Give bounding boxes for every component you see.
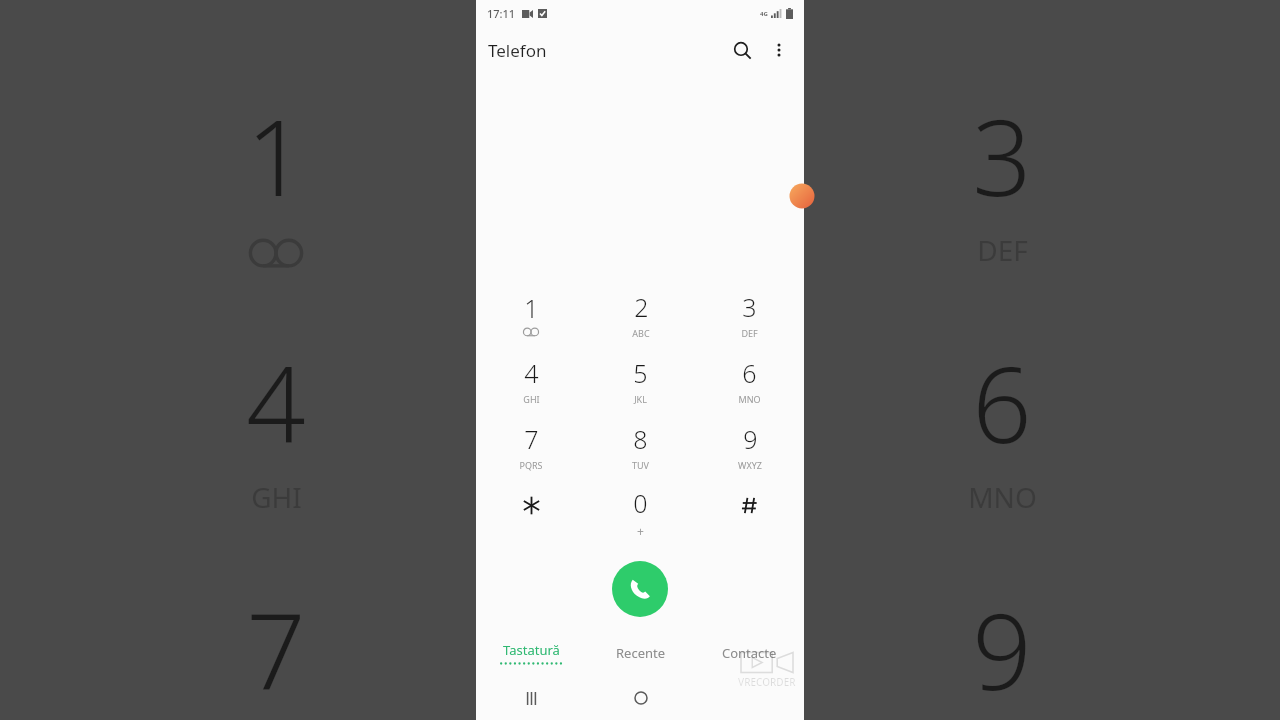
staticText: VRECORDER bbox=[738, 675, 796, 689]
staticText: 4 bbox=[524, 356, 539, 390]
staticText: Telefon bbox=[488, 39, 547, 62]
button[interactable]: Key # bbox=[695, 483, 804, 549]
staticText: 17:11 bbox=[487, 6, 516, 21]
staticText: 6 bbox=[742, 356, 757, 390]
staticText: 4G bbox=[760, 10, 768, 18]
button[interactable]: Tastatură bbox=[476, 630, 586, 676]
staticText: ABC bbox=[632, 327, 650, 339]
staticText: Contacte bbox=[722, 644, 777, 662]
button[interactable]: Key 7 bbox=[476, 417, 586, 483]
staticText: 1 bbox=[246, 85, 306, 227]
staticText: TUV bbox=[632, 459, 649, 471]
staticText: 0 bbox=[633, 486, 648, 520]
staticText: 7 bbox=[524, 422, 539, 456]
button[interactable]: Key 0 bbox=[586, 483, 695, 549]
button[interactable]: Search bbox=[722, 30, 762, 70]
button[interactable]: More options bbox=[762, 33, 796, 67]
staticText: PQRS bbox=[519, 459, 543, 471]
staticText: 9 bbox=[743, 422, 758, 456]
button[interactable]: Recent apps bbox=[476, 676, 586, 720]
staticText: DEF bbox=[741, 327, 758, 339]
staticText: 5 bbox=[633, 356, 648, 390]
staticText: GHI bbox=[251, 478, 302, 516]
staticText: Recente bbox=[616, 644, 666, 662]
button[interactable]: Contacte bbox=[695, 630, 804, 676]
staticText: WXYZ bbox=[738, 459, 762, 471]
staticText: JKL bbox=[634, 393, 647, 405]
button[interactable]: Key 4 bbox=[476, 351, 586, 417]
staticText: GHI bbox=[523, 393, 540, 405]
staticText: DEF bbox=[977, 231, 1028, 269]
button[interactable]: Key 5 bbox=[586, 351, 695, 417]
staticText: Tastatură bbox=[503, 641, 560, 659]
staticText: 8 bbox=[633, 422, 648, 456]
staticText: MNO bbox=[738, 393, 761, 405]
staticText: + bbox=[637, 523, 644, 539]
staticText: 4 bbox=[246, 332, 306, 474]
button[interactable]: Key 2 bbox=[586, 285, 695, 351]
button[interactable]: Key 1 bbox=[476, 285, 586, 351]
button[interactable]: Key 3 bbox=[695, 285, 804, 351]
button[interactable]: Home bbox=[586, 676, 695, 720]
staticText: 3 bbox=[972, 85, 1032, 227]
button[interactable]: Call bbox=[612, 561, 668, 617]
button[interactable]: Key 9 bbox=[695, 417, 804, 483]
button[interactable]: Back bbox=[695, 676, 804, 720]
staticText: 7 bbox=[246, 579, 306, 720]
staticText: 3 bbox=[742, 290, 757, 324]
button[interactable]: Key 6 bbox=[695, 351, 804, 417]
staticText: 9 bbox=[972, 579, 1032, 720]
button[interactable]: Key * bbox=[476, 483, 586, 549]
staticText: MNO bbox=[968, 478, 1037, 516]
staticText: 1 bbox=[524, 291, 539, 325]
button[interactable]: Key 8 bbox=[586, 417, 695, 483]
staticText: 6 bbox=[972, 332, 1032, 474]
button[interactable]: Recente bbox=[586, 630, 695, 676]
staticText: 2 bbox=[634, 290, 649, 324]
